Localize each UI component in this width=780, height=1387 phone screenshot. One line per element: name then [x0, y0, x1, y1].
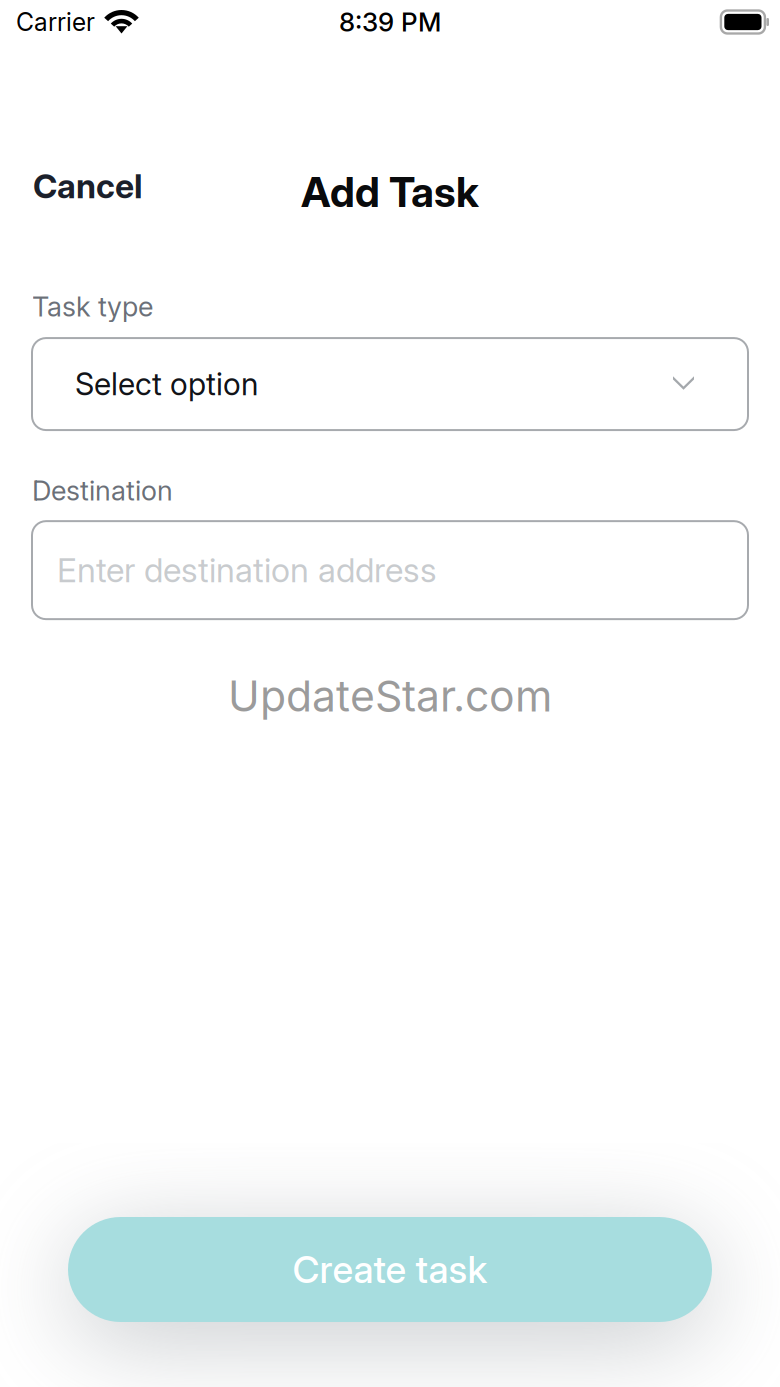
staticText: Create task — [292, 1247, 487, 1292]
button[interactable]: Cancel — [23, 152, 153, 220]
button[interactable]: Task type, Select option — [32, 338, 748, 430]
staticText: Enter destination address — [57, 550, 437, 590]
staticText: UpdateStar.com — [228, 670, 552, 722]
staticText: 8:39 PM — [339, 6, 441, 38]
staticText: Cancel — [33, 166, 143, 206]
staticText: Destination — [32, 474, 173, 507]
staticText: Select option — [75, 365, 258, 403]
button[interactable]: Destination, Enter destination address — [32, 521, 748, 619]
staticText: Carrier — [16, 7, 95, 37]
button[interactable]: Create task — [68, 1217, 712, 1322]
staticText: Add Task — [301, 167, 479, 217]
staticText: Task type — [32, 290, 153, 323]
